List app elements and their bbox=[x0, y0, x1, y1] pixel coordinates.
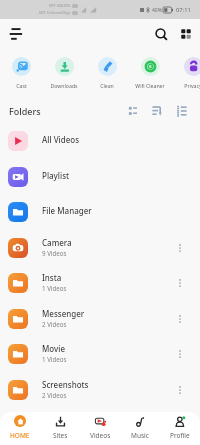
staticText: Insta bbox=[42, 272, 62, 283]
staticText: Folders bbox=[9, 105, 41, 117]
staticText: 2 Videos bbox=[42, 391, 67, 399]
staticText: Profile bbox=[170, 431, 190, 440]
button[interactable]: Privacy bbox=[173, 57, 200, 89]
button[interactable]: Sort option bbox=[148, 102, 166, 120]
button[interactable]: File Manager bbox=[0, 194, 200, 229]
button[interactable]: More options bbox=[172, 240, 188, 256]
staticText: Downloads bbox=[50, 82, 78, 89]
staticText: Privacy bbox=[184, 82, 200, 89]
button[interactable]: Sites bbox=[40, 412, 80, 440]
staticText: Wifi Cleaner bbox=[135, 82, 165, 89]
button[interactable]: Sort option bbox=[124, 102, 142, 120]
staticText: Music bbox=[131, 431, 149, 440]
button[interactable]: Playlist bbox=[0, 159, 200, 194]
button[interactable]: Menu bbox=[4, 22, 28, 46]
staticText: 40% bbox=[152, 7, 162, 14]
button[interactable]: Sort option bbox=[173, 102, 191, 120]
staticText: 9 Videos bbox=[42, 249, 67, 257]
button[interactable]: Profile bbox=[160, 412, 200, 440]
staticText: Screenshots bbox=[42, 379, 89, 390]
button[interactable]: Movie bbox=[0, 336, 200, 371]
staticText: HOME bbox=[10, 431, 30, 440]
staticText: 1 Videos bbox=[42, 284, 67, 292]
button[interactable]: Clean bbox=[87, 57, 127, 89]
staticText: MY MAXIS bbox=[49, 3, 71, 9]
staticText: MY CelcomDigi bbox=[39, 10, 71, 16]
button[interactable]: More options bbox=[172, 382, 188, 398]
button[interactable]: Camera bbox=[0, 230, 200, 265]
staticText: Videos bbox=[90, 431, 111, 440]
staticText: Sites bbox=[53, 431, 68, 440]
staticText: 2 Videos bbox=[42, 320, 67, 328]
button[interactable]: HOME bbox=[0, 412, 40, 440]
button[interactable]: Grid view bbox=[174, 22, 198, 46]
button[interactable]: Cast bbox=[1, 57, 41, 89]
button[interactable]: Screenshots bbox=[0, 372, 200, 407]
staticText: Messenger bbox=[42, 308, 85, 319]
staticText: Playlist bbox=[42, 170, 70, 181]
button[interactable]: All Videos bbox=[0, 123, 200, 158]
staticText: Camera bbox=[42, 237, 72, 248]
button[interactable]: Messenger bbox=[0, 301, 200, 336]
button[interactable]: Downloads bbox=[44, 57, 84, 89]
button[interactable]: Search bbox=[149, 22, 173, 46]
button[interactable]: More options bbox=[172, 311, 188, 327]
button[interactable]: Music bbox=[120, 412, 160, 440]
button[interactable]: Wifi Cleaner bbox=[130, 57, 170, 89]
staticText: Movie bbox=[42, 343, 66, 354]
staticText: 1 Videos bbox=[42, 355, 67, 363]
staticText: File Manager bbox=[42, 205, 92, 216]
button[interactable]: Videos bbox=[80, 412, 120, 440]
staticText: Cast bbox=[16, 82, 27, 89]
button[interactable]: More options bbox=[172, 275, 188, 291]
staticText: Clean bbox=[100, 82, 114, 89]
staticText: 07:11 bbox=[176, 6, 191, 14]
staticText: All Videos bbox=[42, 134, 80, 145]
button[interactable]: More options bbox=[172, 346, 188, 362]
button[interactable]: Insta bbox=[0, 265, 200, 300]
